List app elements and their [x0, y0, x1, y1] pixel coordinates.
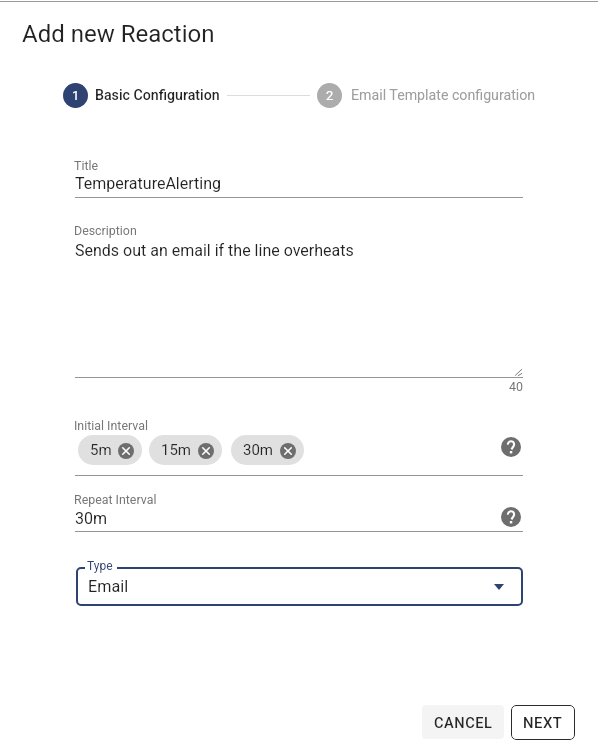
staticText: 40: [509, 379, 523, 394]
staticText: 2: [326, 88, 334, 103]
staticText: Description: [74, 223, 137, 238]
button[interactable]: 2: [317, 83, 536, 108]
staticText: Sends out an email if the line overheats: [75, 241, 354, 260]
button[interactable]: CANCEL: [422, 705, 504, 739]
staticText: CANCEL: [434, 714, 493, 731]
staticText: Email Template configuration: [351, 87, 536, 104]
staticText: Add new Reaction: [22, 20, 215, 48]
button[interactable]: 5m: [78, 435, 142, 465]
button[interactable]: Help: [501, 507, 521, 527]
staticText: TemperatureAlerting: [75, 174, 221, 193]
staticText: Repeat Interval: [74, 492, 157, 507]
button[interactable]: Open type dropdown: [490, 578, 508, 596]
staticText: Basic Configuration: [95, 87, 220, 104]
button[interactable]: 1: [63, 83, 220, 108]
button[interactable]: 30m: [231, 435, 304, 465]
button[interactable]: NEXT: [511, 705, 575, 740]
staticText: 30m: [243, 441, 274, 459]
staticText: Type: [87, 559, 113, 573]
staticText: 1: [72, 88, 80, 103]
button[interactable]: Help: [501, 437, 521, 457]
button[interactable]: [76, 567, 523, 606]
staticText: Title: [74, 158, 99, 173]
staticText: Email: [88, 577, 129, 596]
staticText: 30m: [75, 509, 108, 528]
staticText: 5m: [90, 441, 112, 459]
button[interactable]: 15m: [149, 435, 222, 465]
staticText: NEXT: [523, 714, 563, 731]
staticText: Initial Interval: [74, 418, 148, 433]
staticText: 15m: [161, 441, 192, 459]
